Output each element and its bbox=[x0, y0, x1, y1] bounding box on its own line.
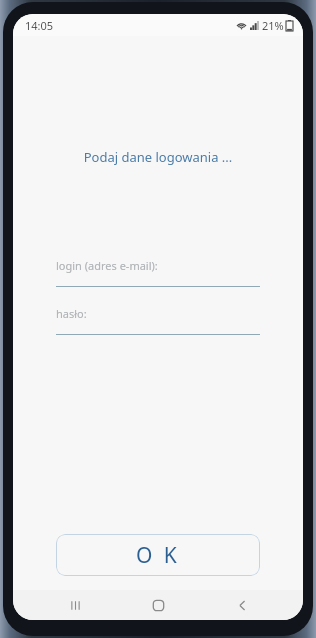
button[interactable]: Recent apps bbox=[53, 590, 97, 620]
staticText: 14:05 bbox=[25, 18, 54, 33]
button[interactable]: O K bbox=[56, 534, 260, 576]
staticText: hasło: bbox=[56, 306, 87, 321]
staticText: Podaj dane logowania ... bbox=[13, 148, 303, 166]
staticText: login (adres e-mail): bbox=[56, 258, 158, 273]
button[interactable]: Back bbox=[220, 590, 264, 620]
button[interactable]: hasło: bbox=[56, 306, 260, 321]
staticText: O K bbox=[136, 541, 180, 570]
button[interactable]: login (adres e-mail): bbox=[56, 258, 260, 273]
button[interactable]: Home bbox=[136, 590, 180, 620]
staticText: 21% bbox=[262, 18, 284, 33]
